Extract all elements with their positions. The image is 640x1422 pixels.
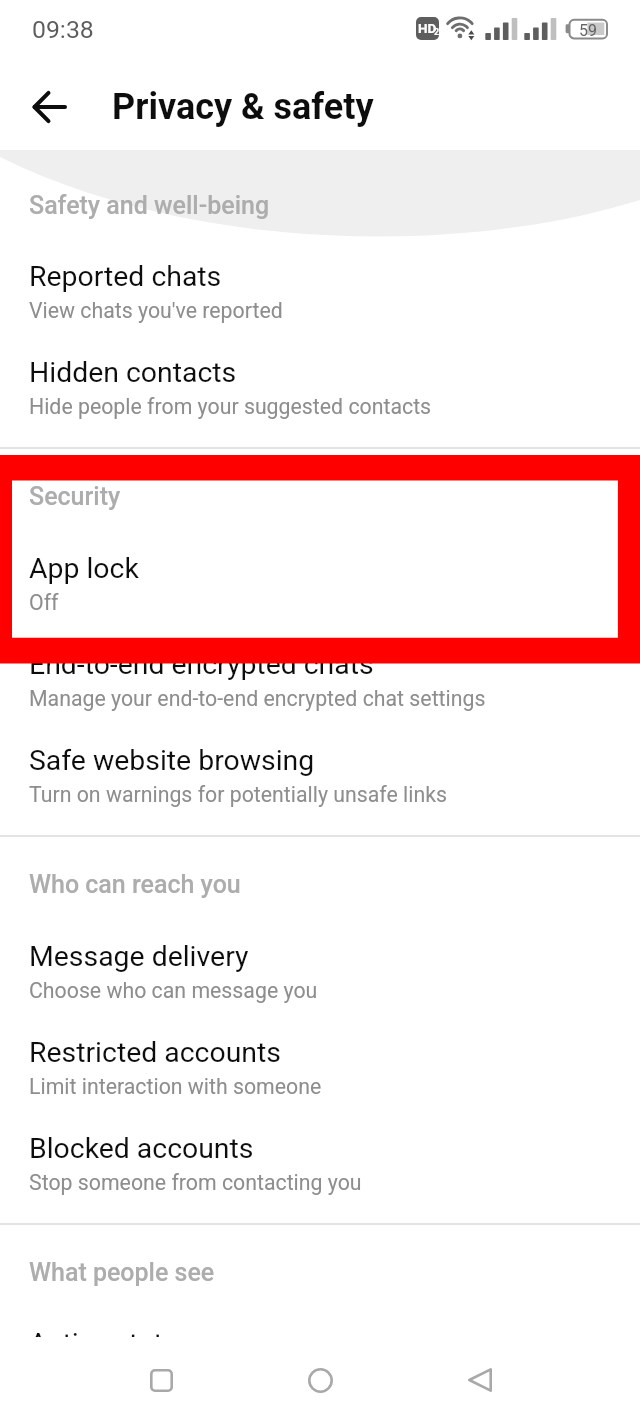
button[interactable]: Safe website browsing xyxy=(0,722,640,829)
staticText: Off xyxy=(29,590,59,615)
button[interactable]: Message delivery xyxy=(0,918,640,1025)
button[interactable]: Recents xyxy=(127,1346,195,1414)
button[interactable]: App lock xyxy=(0,530,640,637)
staticText: 2 xyxy=(434,27,440,38)
staticText: Safe website browsing xyxy=(29,744,315,777)
staticText: Stop someone from contacting you xyxy=(29,1170,362,1195)
button[interactable]: Restricted accounts xyxy=(0,1014,640,1121)
button[interactable]: Back xyxy=(8,66,90,148)
button[interactable]: Back xyxy=(446,1346,514,1414)
staticText: Limit interaction with someone xyxy=(29,1074,322,1099)
staticText: Who can reach you xyxy=(29,870,241,899)
staticText: View chats you've reported xyxy=(29,298,283,323)
staticText: Blocked accounts xyxy=(29,1132,254,1165)
staticText: Security xyxy=(29,482,121,511)
staticText: 09:38 xyxy=(32,15,94,44)
staticText: Hidden contacts xyxy=(29,356,237,389)
staticText: Manage your end-to-end encrypted chat se… xyxy=(29,686,486,711)
staticText: Reported chats xyxy=(29,260,222,293)
staticText: Privacy & safety xyxy=(112,86,374,128)
staticText: Message delivery xyxy=(29,940,249,973)
staticText: Safety and well-being xyxy=(29,191,270,220)
staticText: Hide people from your suggested contacts xyxy=(29,394,432,419)
staticText: App lock xyxy=(29,552,139,585)
staticText: 59 xyxy=(579,21,597,40)
button[interactable]: Home xyxy=(286,1346,354,1414)
staticText: Active status xyxy=(29,1327,194,1337)
staticText: Choose who can message you xyxy=(29,978,318,1003)
staticText: What people see xyxy=(29,1258,215,1287)
staticText: End-to-end encrypted chats xyxy=(29,648,374,681)
staticText: HD xyxy=(418,20,437,36)
button[interactable]: End-to-end encrypted chats xyxy=(0,626,640,733)
button[interactable]: Active status xyxy=(0,1305,640,1337)
button[interactable]: Reported chats xyxy=(0,238,640,345)
button[interactable]: Hidden contacts xyxy=(0,334,640,441)
staticText: Restricted accounts xyxy=(29,1036,281,1069)
button[interactable]: Blocked accounts xyxy=(0,1110,640,1217)
staticText: Turn on warnings for potentially unsafe … xyxy=(29,782,447,807)
